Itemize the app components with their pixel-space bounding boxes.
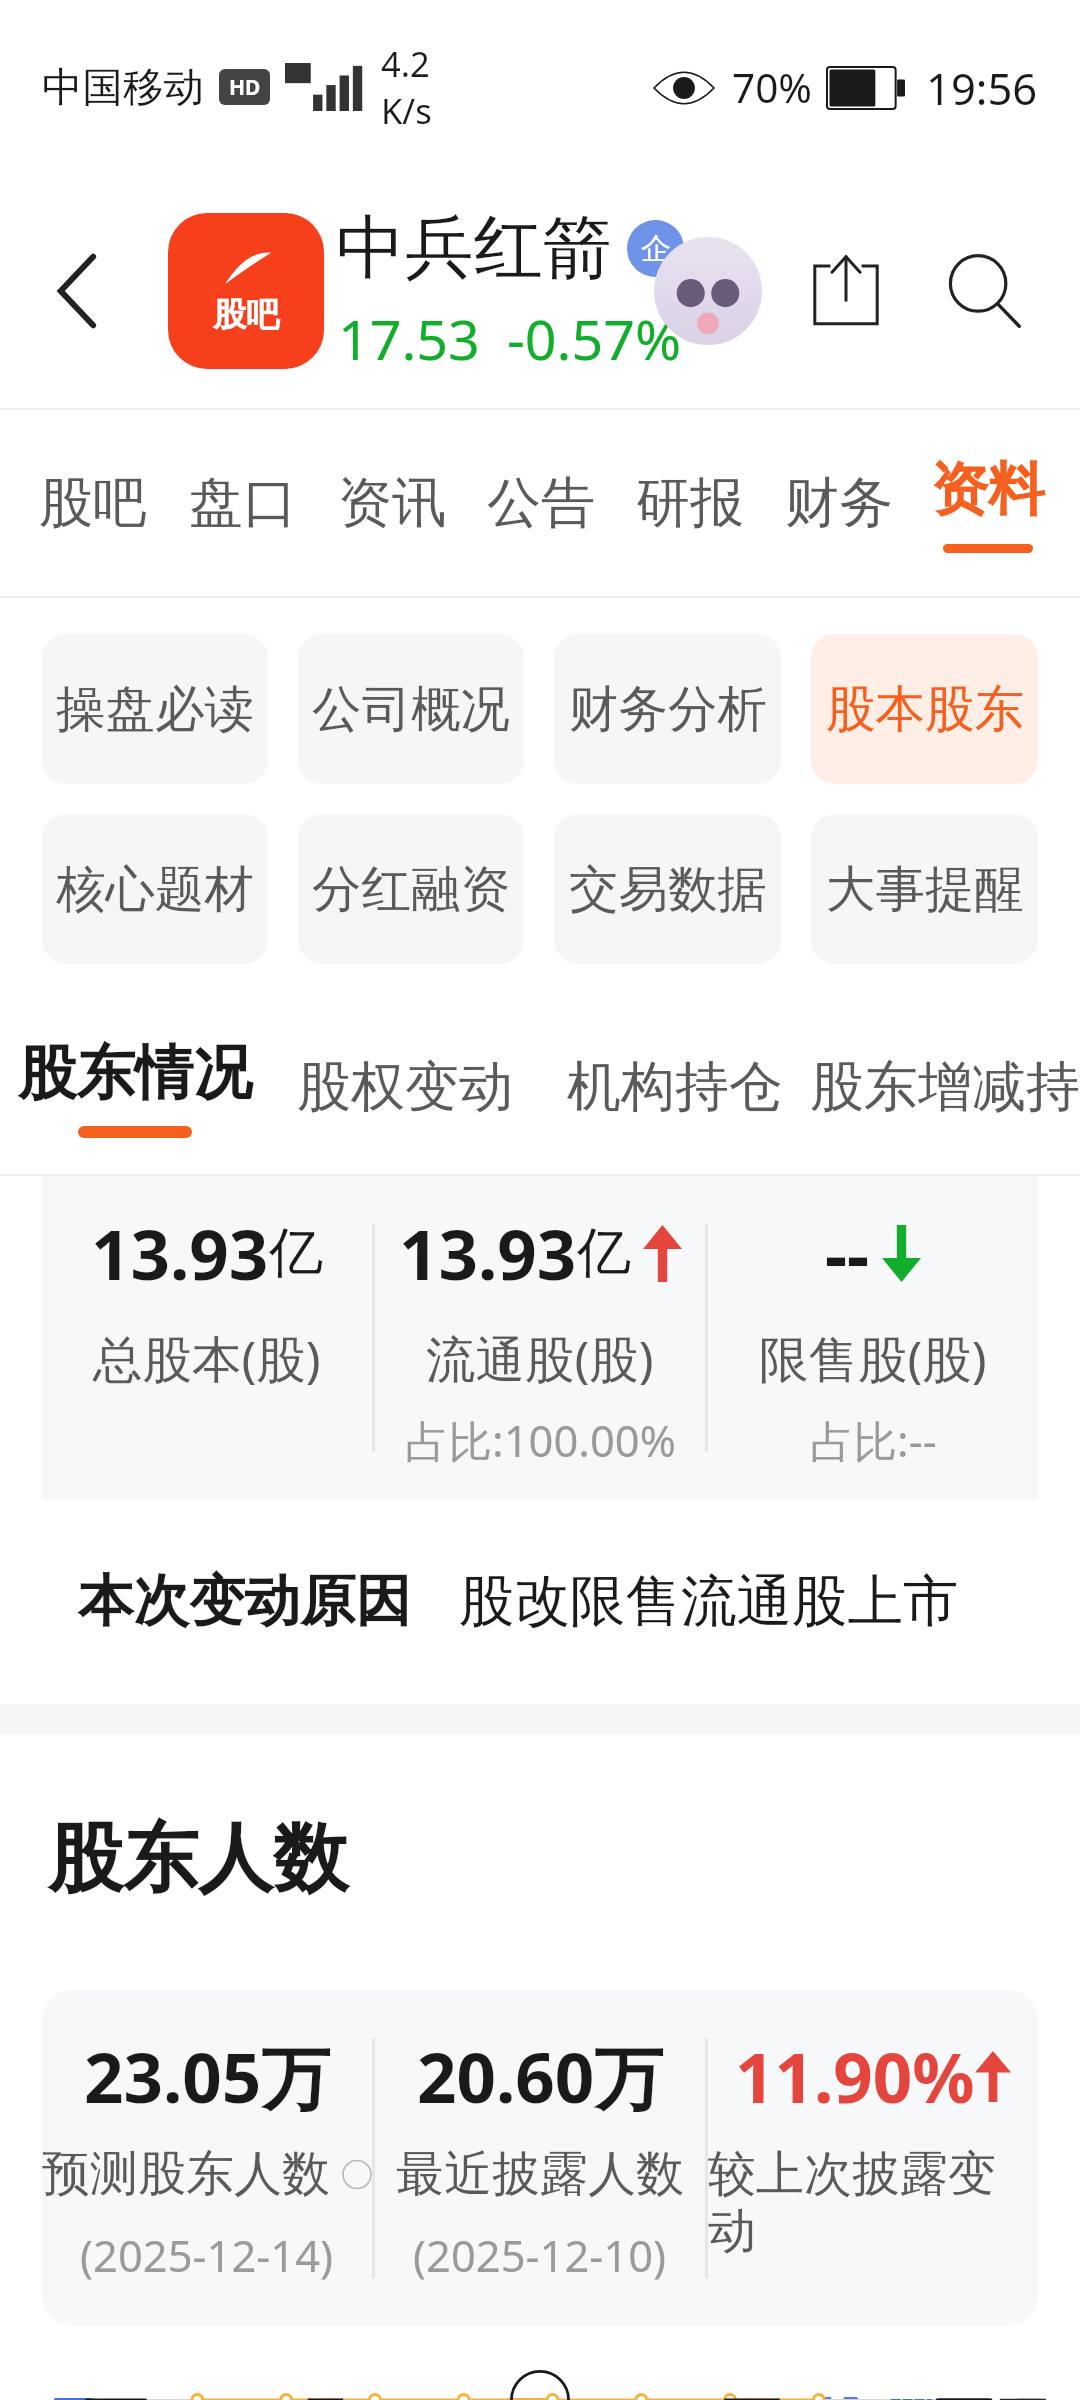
staticText: 限售股(股) xyxy=(759,1324,987,1392)
staticText: 亿 xyxy=(577,1219,631,1287)
button[interactable]: 分享 xyxy=(780,225,912,357)
staticText: 股东人数(万户) xyxy=(114,2398,441,2400)
button[interactable]: 核心题材 xyxy=(42,814,268,964)
staticText: 研报 xyxy=(636,469,744,537)
button[interactable]: 股东情况 xyxy=(0,1000,270,1174)
staticText: 核心题材 xyxy=(56,858,254,920)
staticText: 本次变动原因 xyxy=(78,1567,411,1637)
staticText: HD xyxy=(229,73,261,102)
staticText: 公司概况 xyxy=(312,678,510,740)
button[interactable]: 搜索 xyxy=(918,225,1050,357)
staticText: 交易数据 xyxy=(569,858,767,920)
staticText: 亿 xyxy=(269,1219,323,1287)
staticText: 股吧 xyxy=(213,294,279,336)
staticText: 企 xyxy=(641,230,671,268)
staticText: 预测股东人数 xyxy=(42,2144,330,2204)
staticText: 机构持仓 xyxy=(567,1053,783,1121)
button[interactable]: 资讯 xyxy=(317,410,466,596)
button[interactable]: 财务 xyxy=(764,410,913,596)
staticText: 70% xyxy=(732,60,812,115)
button[interactable]: 股本股东 xyxy=(811,634,1038,784)
staticText: 公告 xyxy=(487,469,595,537)
staticText: 较上次披露变动 xyxy=(708,2144,1038,2262)
staticText: 股东情况 xyxy=(18,1037,252,1111)
staticText: 股价(元) xyxy=(573,2398,752,2400)
staticText: 中兵红箭 xyxy=(336,205,612,292)
staticText: 17.53 xyxy=(338,301,480,377)
button[interactable]: 交易数据 xyxy=(554,814,781,964)
staticText: 分红融资 xyxy=(312,858,510,920)
staticText: 财务分析 xyxy=(569,678,767,740)
staticText: 流通股(股) xyxy=(426,1324,654,1392)
button[interactable]: 公告 xyxy=(466,410,615,596)
button[interactable]: 股吧 xyxy=(168,213,324,369)
staticText: 操盘必读 xyxy=(56,678,254,740)
button[interactable]: 股权变动 xyxy=(270,1000,540,1174)
button[interactable]: 分红融资 xyxy=(298,814,524,964)
button[interactable]: 资料 xyxy=(913,410,1062,596)
button[interactable]: 研报 xyxy=(615,410,764,596)
staticText: 股东增减持 xyxy=(810,1053,1080,1121)
staticText: 11.90% xyxy=(735,2029,975,2123)
staticText: 23.05万 xyxy=(84,2029,331,2123)
staticText: 占比:100.00% xyxy=(405,1410,676,1469)
button[interactable]: 财务分析 xyxy=(554,634,781,784)
staticText: 4.2 xyxy=(381,40,430,87)
button[interactable]: 股吧 xyxy=(18,410,168,596)
staticText: 股吧 xyxy=(39,469,147,537)
button[interactable]: 机构持仓 xyxy=(540,1000,810,1174)
staticText: 总股本(股) xyxy=(93,1324,321,1392)
staticText: 最近披露人数 xyxy=(396,2144,684,2204)
staticText: 盘口 xyxy=(189,469,297,537)
staticText: 占比:-- xyxy=(810,1410,937,1469)
button[interactable]: 盘口 xyxy=(168,410,317,596)
staticText: 资料 xyxy=(931,454,1045,526)
staticText: 19:56 xyxy=(926,58,1038,117)
staticText: 中国移动 xyxy=(42,62,204,113)
staticText: 财务 xyxy=(785,469,893,537)
button[interactable]: 返回 xyxy=(12,225,144,357)
staticText: (2025-12-10) xyxy=(413,2225,667,2284)
staticText: 大事提醒 xyxy=(826,858,1024,920)
staticText: -0.57% xyxy=(507,301,682,377)
staticText: 13.93 xyxy=(399,1206,577,1300)
button[interactable]: 大事提醒 xyxy=(811,814,1038,964)
staticText: 股权变动 xyxy=(297,1053,513,1121)
staticText: 股东人数 xyxy=(48,1812,348,1906)
staticText: K/s xyxy=(381,87,432,134)
staticText: 预测股东人数(万户) xyxy=(878,2398,1038,2400)
staticText: (2025-12-14) xyxy=(80,2225,334,2284)
button[interactable]: 股东增减持 xyxy=(810,1000,1080,1174)
staticText: 13.93 xyxy=(91,1206,269,1300)
staticText: -- xyxy=(825,1206,870,1300)
staticText: 股本股东 xyxy=(826,678,1024,740)
button[interactable]: 操盘必读 xyxy=(42,634,268,784)
staticText: 资讯 xyxy=(338,469,446,537)
staticText: 20.60万 xyxy=(417,2029,664,2123)
button[interactable]: 公司概况 xyxy=(298,634,524,784)
button[interactable]: 用户头像 xyxy=(642,225,774,357)
staticText: 股改限售流通股上市 xyxy=(459,1567,959,1637)
